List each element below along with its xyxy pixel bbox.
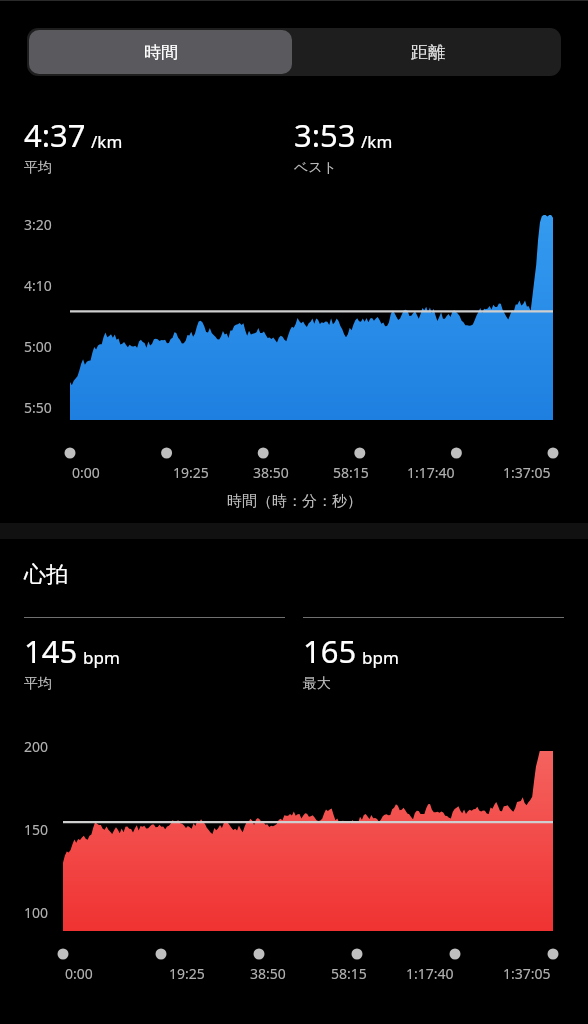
staticText: /km xyxy=(91,130,123,153)
staticText: /km xyxy=(361,130,393,153)
staticText: 165 xyxy=(303,630,357,672)
staticText: 38:50 xyxy=(253,463,289,482)
staticText: 距離 xyxy=(411,42,445,63)
staticText: 0:00 xyxy=(72,463,100,482)
staticText: 4:10 xyxy=(24,276,52,295)
staticText: ベスト xyxy=(294,159,337,177)
staticText: 1:37:05 xyxy=(503,463,551,482)
button[interactable]: 距離 xyxy=(296,30,559,74)
staticText: 38:50 xyxy=(250,964,286,983)
staticText: 58:15 xyxy=(331,964,367,983)
button[interactable]: 時間 xyxy=(29,30,292,74)
staticText: 4:37 xyxy=(24,114,86,156)
staticText: 58:15 xyxy=(333,463,369,482)
staticText: 19:25 xyxy=(169,964,205,983)
staticText: 100 xyxy=(24,903,49,922)
staticText: 5:50 xyxy=(24,398,52,417)
staticText: 平均 xyxy=(24,675,52,693)
staticText: 平均 xyxy=(24,159,52,177)
staticText: 200 xyxy=(24,737,49,756)
staticText: bpm xyxy=(83,646,120,669)
staticText: 1:17:40 xyxy=(407,463,455,482)
staticText: 時間 xyxy=(144,42,178,63)
staticText: 3:53 xyxy=(294,114,356,156)
staticText: 心拍 xyxy=(24,561,68,589)
staticText: 1:17:40 xyxy=(406,964,454,983)
staticText: 19:25 xyxy=(173,463,209,482)
staticText: 145 xyxy=(24,630,78,672)
staticText: 1:37:05 xyxy=(503,964,551,983)
staticText: 150 xyxy=(24,820,49,839)
staticText: 0:00 xyxy=(65,964,93,983)
staticText: 最大 xyxy=(303,675,331,693)
staticText: 5:00 xyxy=(24,337,52,356)
staticText: 3:20 xyxy=(24,215,52,234)
staticText: 時間（時：分：秒） xyxy=(227,492,362,511)
staticText: bpm xyxy=(362,646,399,669)
